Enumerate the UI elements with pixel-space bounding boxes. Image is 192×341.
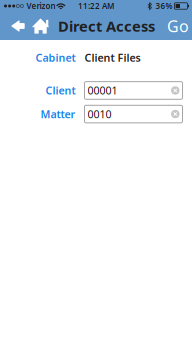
staticText: Go xyxy=(167,15,189,37)
staticText: Client xyxy=(45,83,75,98)
staticText: 00001 xyxy=(87,83,117,98)
button[interactable]: 0010 xyxy=(84,105,182,123)
staticText: 0010 xyxy=(87,107,111,121)
button[interactable]: Go xyxy=(164,13,192,39)
button[interactable]: Back xyxy=(0,13,32,39)
staticText: 11:22 AM xyxy=(78,1,114,11)
button[interactable]: 00001 xyxy=(84,82,182,99)
staticText: 36% xyxy=(155,1,172,11)
staticText: Verizon xyxy=(26,1,55,11)
staticText: Cabinet xyxy=(35,50,75,65)
staticText: Client Files xyxy=(84,50,140,65)
button[interactable]: Home xyxy=(32,13,49,39)
staticText: Matter xyxy=(40,107,75,121)
staticText: Direct Access xyxy=(58,16,155,36)
